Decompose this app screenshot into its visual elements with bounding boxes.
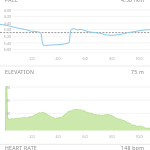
staticText: 4:20 (0, 14, 11, 19)
staticText: 5:20 (0, 34, 11, 39)
staticText: 10.0 (133, 134, 145, 139)
staticText: 6.0 (79, 134, 91, 139)
staticText: 4:40 (0, 21, 11, 26)
staticText: ELEVATION (5, 69, 35, 76)
staticText: 10.0 (133, 56, 145, 61)
staticText: 20 (0, 111, 10, 116)
staticText: 4.0 (52, 134, 64, 139)
staticText: 75 m (131, 69, 145, 76)
staticText: 8.0 (106, 134, 118, 139)
staticText: HEART RATE (5, 145, 37, 150)
staticText: PACE (5, 0, 19, 4)
button[interactable]: PACE (0, 0, 150, 4)
button[interactable]: HEART RATE (0, 143, 150, 150)
staticText: 45 (0, 98, 10, 103)
button[interactable]: ELEVATION (0, 67, 150, 77)
staticText: 5:00 (0, 27, 11, 32)
staticText: 6.0 (79, 56, 91, 61)
staticText: 8.0 (106, 56, 118, 61)
staticText: 2.0 (26, 56, 38, 61)
staticText: 70 (0, 85, 10, 90)
staticText: 6:00 (0, 47, 11, 52)
staticText: 4:00 (0, 8, 11, 13)
staticText: 4.0 (52, 56, 64, 61)
staticText: 148 bpm (121, 145, 145, 150)
staticText: 5:40 (0, 41, 11, 46)
staticText: 4:56 /km (121, 0, 145, 4)
staticText: 2.0 (26, 134, 38, 139)
